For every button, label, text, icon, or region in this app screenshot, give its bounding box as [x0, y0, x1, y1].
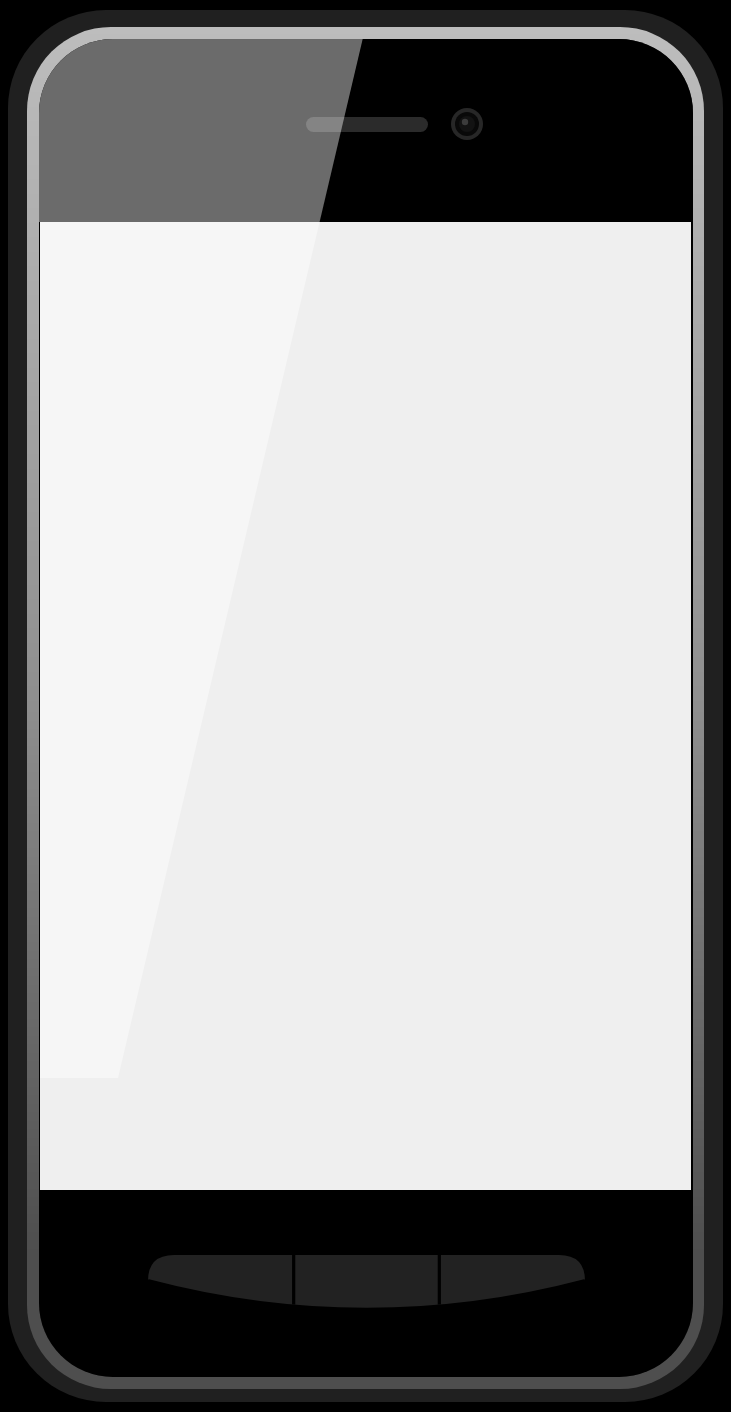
button[interactable]: Android phone device mockup — [0, 0, 731, 1412]
